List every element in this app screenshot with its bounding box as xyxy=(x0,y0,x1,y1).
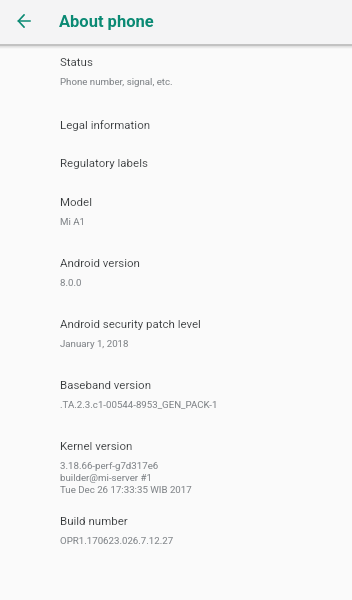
button[interactable]: Back xyxy=(10,7,38,35)
staticText: Mi A1 xyxy=(60,216,85,228)
staticText: Baseband version xyxy=(60,378,151,392)
button[interactable]: Android version xyxy=(0,242,352,303)
staticText: About phone xyxy=(59,12,154,31)
staticText: Model xyxy=(60,195,92,209)
staticText: Android version xyxy=(60,256,140,270)
staticText: 8.0.0 xyxy=(60,277,82,289)
staticText: Build number xyxy=(60,514,128,528)
staticText: Android security patch level xyxy=(60,317,201,331)
staticText: Phone number, signal, etc. xyxy=(60,76,173,88)
staticText: 3.18.66-perf-g7d317e6 builder@mi-server … xyxy=(60,460,192,496)
button[interactable]: Android security patch level xyxy=(0,303,352,364)
button[interactable]: Regulatory labels xyxy=(0,144,352,182)
button[interactable]: Build number xyxy=(0,505,352,563)
staticText: OPR1.170623.026.7.12.27 xyxy=(60,535,174,547)
button[interactable]: Status xyxy=(0,49,352,103)
staticText: Kernel version xyxy=(60,439,133,453)
staticText: January 1, 2018 xyxy=(60,338,129,350)
staticText: Regulatory labels xyxy=(60,156,148,170)
button[interactable]: Legal information xyxy=(0,103,352,144)
button[interactable]: Baseband version xyxy=(0,364,352,425)
button[interactable]: Model xyxy=(0,182,352,242)
staticText: .TA.2.3.c1-00544-8953_GEN_PACK-1 xyxy=(60,399,218,411)
staticText: Status xyxy=(60,55,93,69)
staticText: Legal information xyxy=(60,118,151,132)
button[interactable]: Kernel version xyxy=(0,425,352,505)
